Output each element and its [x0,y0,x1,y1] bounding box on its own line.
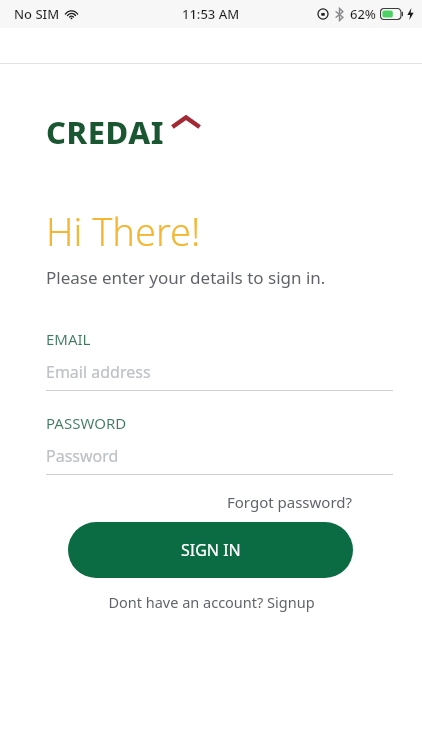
staticText: Forgot password? [227,492,353,512]
staticText: CREDAI [46,111,165,151]
staticText: SIGN IN [181,539,241,561]
button[interactable]: Forgot password? [227,490,353,514]
staticText: EMAIL [46,329,91,349]
button[interactable]: PASSWORD [46,413,393,475]
staticText: Email address [46,361,151,383]
button[interactable]: SIGN IN [68,522,353,578]
staticText: Please enter your details to sign in. [46,266,326,289]
other: CREDAI logo [46,111,206,151]
staticText: Hi There! [46,205,201,257]
staticText: 62% [350,5,376,23]
button[interactable]: Dont have an account? Signup [102,589,321,615]
staticText: PASSWORD [46,413,127,433]
staticText: No SIM [14,5,60,23]
button[interactable]: EMAIL [46,329,393,391]
staticText: 11:53 AM [182,5,240,23]
staticText: Dont have an account? Signup [108,592,315,612]
staticText: Password [46,445,119,467]
